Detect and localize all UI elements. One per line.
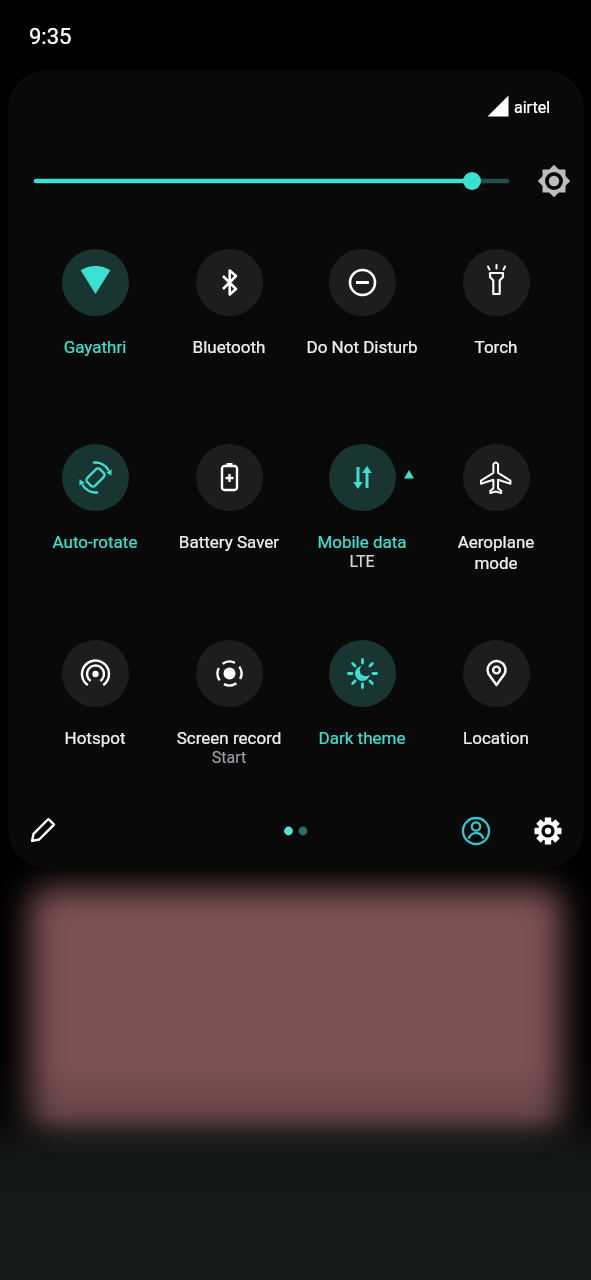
button[interactable]: Battery Saver [162,444,296,552]
button[interactable]: Aeroplane mode [429,444,563,573]
button[interactable]: Screen record [162,640,296,767]
button[interactable]: Bluetooth [162,249,296,357]
staticText: Do Not Disturb [295,337,429,357]
staticText: Gayathri [28,337,162,357]
button[interactable] [530,813,566,849]
staticText: 9:35 [29,24,72,50]
staticText: Battery Saver [162,532,296,552]
button[interactable]: Mobile data [295,444,429,571]
staticText: Screen record [162,728,296,748]
button[interactable]: Dark theme [295,640,429,748]
staticText: Auto-rotate [28,532,162,552]
staticText: airtel [514,98,551,117]
staticText: Mobile data [295,532,429,552]
staticText: Torch [429,337,563,357]
staticText: Hotspot [28,728,162,748]
button[interactable]: Gayathri [28,249,162,357]
button[interactable]: Auto-rotate [28,444,162,552]
button[interactable] [458,813,494,849]
staticText: Aeroplane mode [429,532,563,573]
button[interactable]: Hotspot [28,640,162,748]
staticText: Start [162,748,296,767]
button[interactable] [24,813,60,849]
button[interactable]: Torch [429,249,563,357]
button[interactable] [8,70,584,290]
staticText: Dark theme [295,728,429,748]
button[interactable]: Do Not Disturb [295,249,429,357]
staticText: Location [429,728,563,748]
staticText: Bluetooth [162,337,296,357]
button[interactable]: Location [429,640,563,748]
staticText: LTE [295,552,429,571]
